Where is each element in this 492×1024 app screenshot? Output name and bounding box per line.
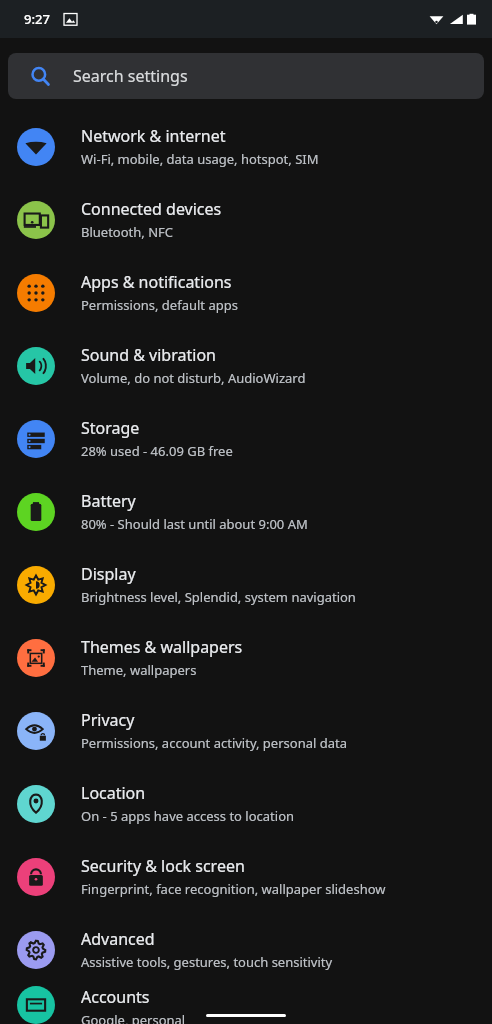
staticText: Bluetooth, NFC xyxy=(81,223,174,241)
staticText: Network & internet xyxy=(81,125,226,147)
staticText: Storage xyxy=(81,417,140,439)
staticText: Google, personal xyxy=(81,1011,186,1024)
staticText: Advanced xyxy=(81,928,155,950)
staticText: Brightness level, Splendid, system navig… xyxy=(81,588,356,606)
staticText: On - 5 apps have access to location xyxy=(81,807,295,825)
staticText: Security & lock screen xyxy=(81,855,245,877)
button[interactable]: Location xyxy=(0,767,492,840)
staticText: 28% used - 46.09 GB free xyxy=(81,442,233,460)
button[interactable]: Privacy xyxy=(0,694,492,767)
staticText: Connected devices xyxy=(81,198,222,220)
staticText: Display xyxy=(81,563,136,585)
staticText: Theme, wallpapers xyxy=(81,661,197,679)
button[interactable]: Network & internet xyxy=(0,110,492,183)
button[interactable]: Connected devices xyxy=(0,183,492,256)
button[interactable]: Search settings xyxy=(8,53,484,99)
button[interactable]: Sound & vibration xyxy=(0,329,492,402)
staticText: Apps & notifications xyxy=(81,271,232,293)
staticText: Volume, do not disturb, AudioWizard xyxy=(81,369,306,387)
staticText: Fingerprint, face recognition, wallpaper… xyxy=(81,880,386,898)
staticText: Accounts xyxy=(81,986,150,1008)
staticText: Themes & wallpapers xyxy=(81,636,243,658)
staticText: Location xyxy=(81,782,146,804)
staticText: Battery xyxy=(81,490,136,512)
staticText: 80% - Should last until about 9:00 AM xyxy=(81,515,308,533)
button[interactable]: Apps & notifications xyxy=(0,256,492,329)
staticText: 9:27 xyxy=(24,10,50,28)
button[interactable]: Display xyxy=(0,548,492,621)
staticText: Permissions, default apps xyxy=(81,296,238,314)
staticText: Privacy xyxy=(81,709,135,731)
button[interactable]: Security & lock screen xyxy=(0,840,492,913)
staticText: Wi-Fi, mobile, data usage, hotspot, SIM xyxy=(81,150,319,168)
button[interactable]: Battery xyxy=(0,475,492,548)
staticText: Search settings xyxy=(73,65,188,87)
button[interactable]: Accounts xyxy=(0,986,492,1024)
staticText: Sound & vibration xyxy=(81,344,216,366)
button[interactable]: Themes & wallpapers xyxy=(0,621,492,694)
button[interactable]: Advanced xyxy=(0,913,492,986)
staticText: Assistive tools, gestures, touch sensiti… xyxy=(81,953,333,971)
button[interactable]: Storage xyxy=(0,402,492,475)
staticText: Permissions, account activity, personal … xyxy=(81,734,347,752)
